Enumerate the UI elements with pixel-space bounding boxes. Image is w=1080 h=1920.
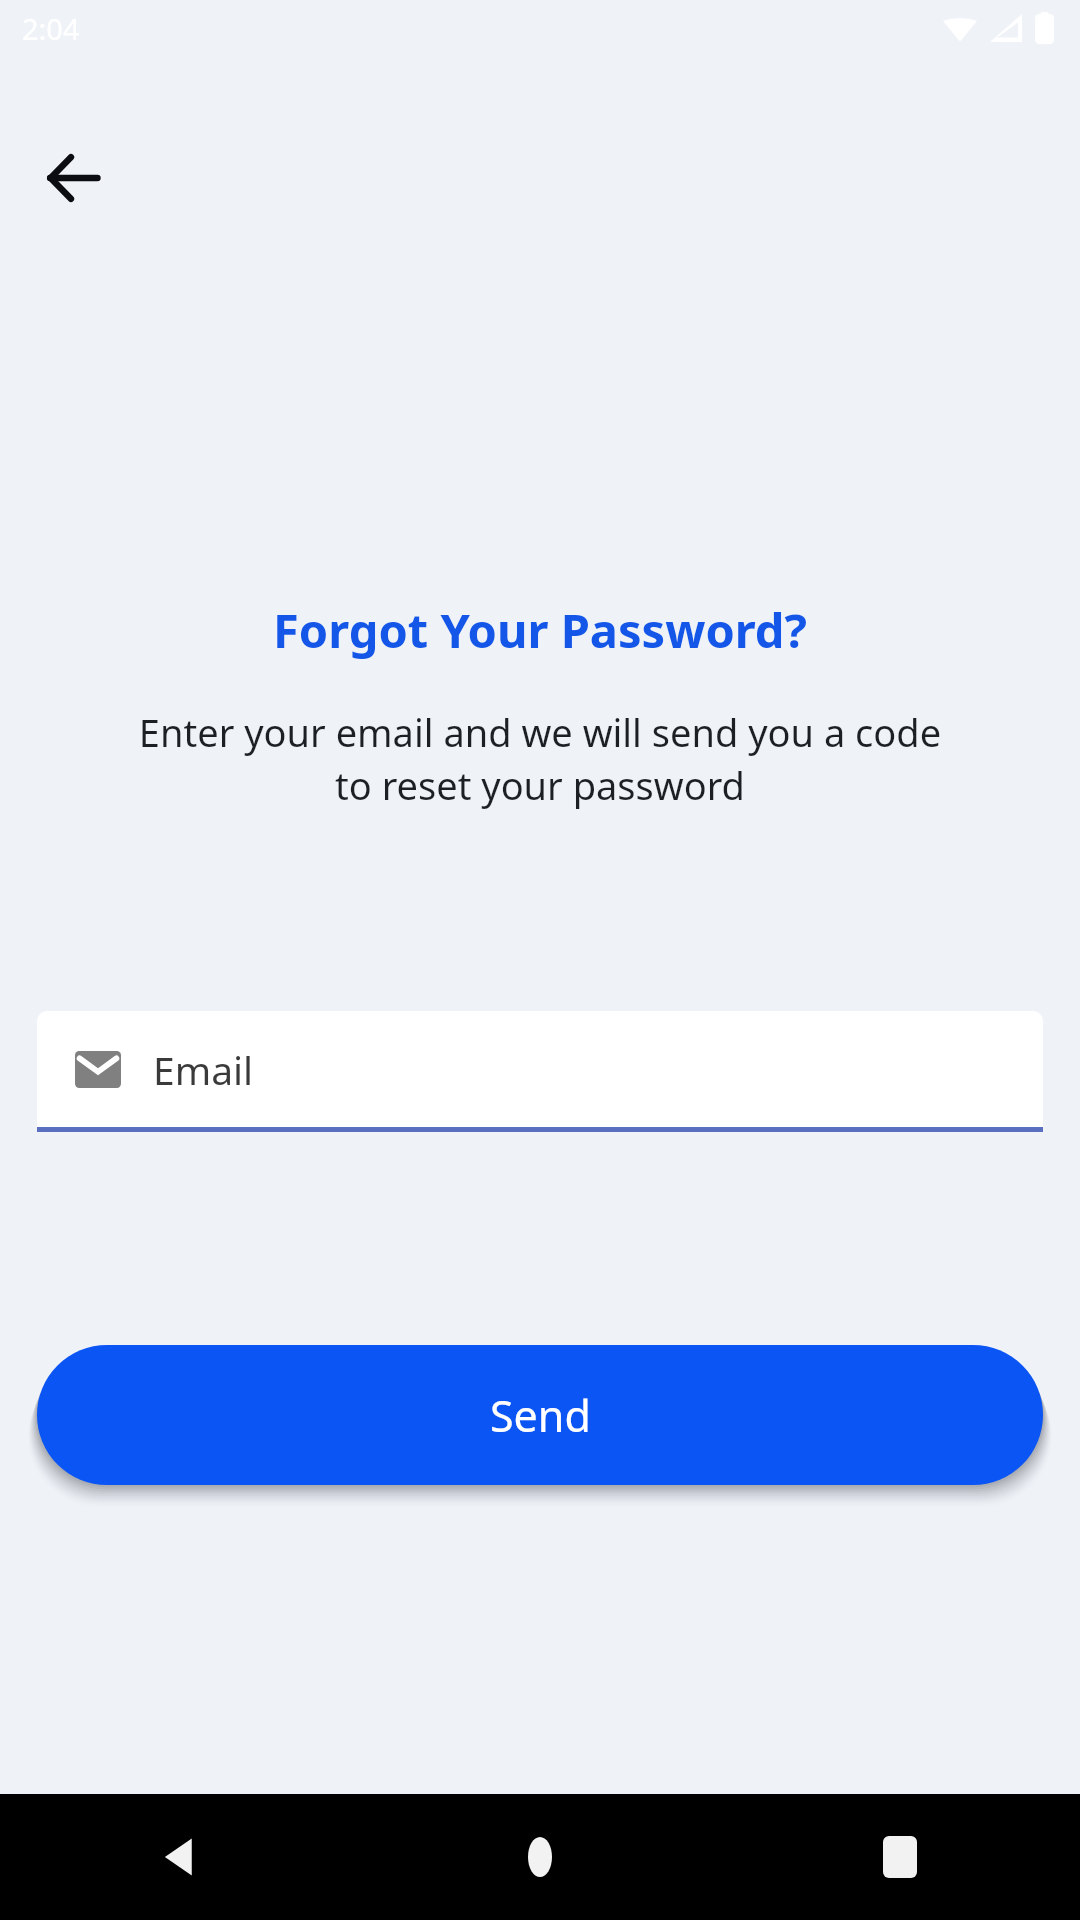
button[interactable]: Back [0,1794,360,1920]
button[interactable]: Send [37,1345,1043,1485]
button[interactable]: Back [30,135,116,221]
staticText: Send [490,1386,591,1445]
staticText: Forgot Your Password? [0,598,1080,662]
button[interactable]: Recent apps [720,1794,1080,1920]
staticText: 2:04 [22,9,80,48]
staticText: Email [153,1043,254,1096]
button[interactable]: Home [360,1794,720,1920]
button[interactable]: Email [37,1011,1043,1132]
staticText: Enter your email and we will send you a … [46,706,1034,811]
